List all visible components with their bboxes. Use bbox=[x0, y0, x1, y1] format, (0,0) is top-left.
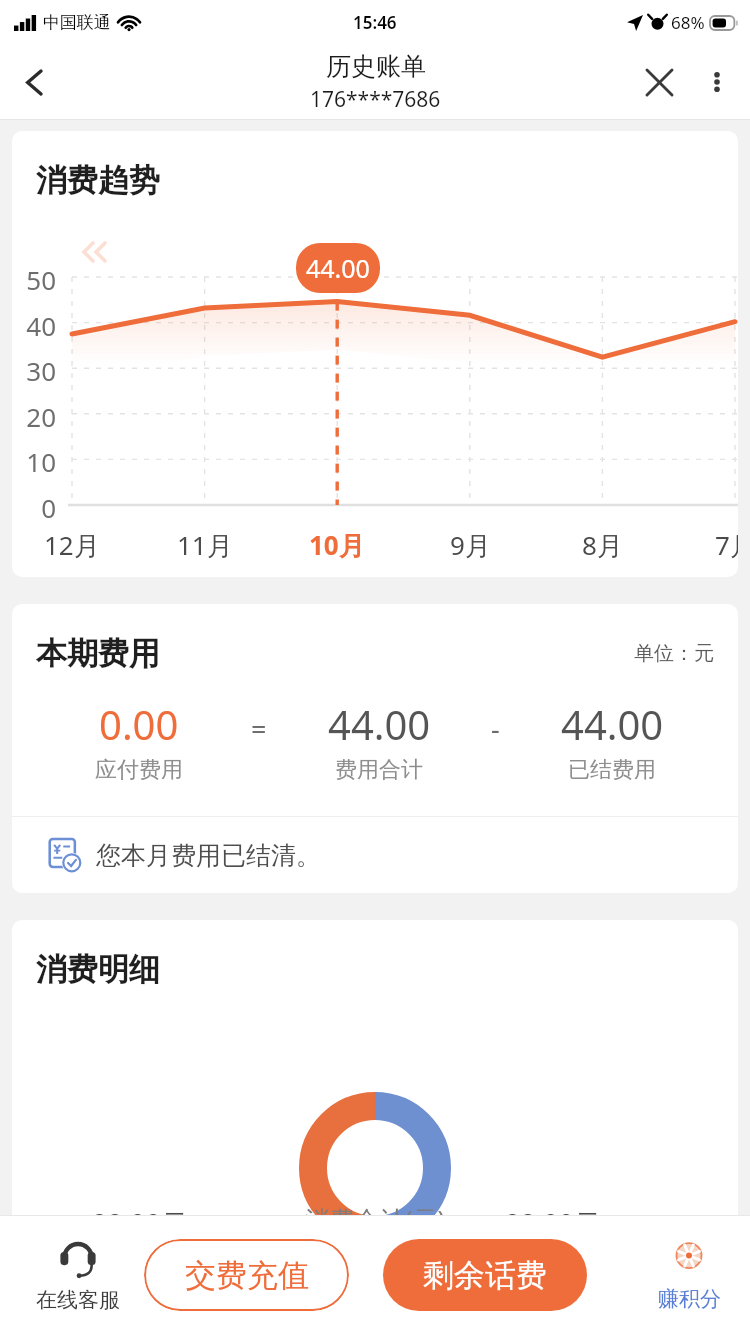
staticText: 单位：元 bbox=[634, 641, 714, 666]
button[interactable]: 在线客服 bbox=[22, 1215, 134, 1334]
staticText: 历史账单 bbox=[326, 51, 426, 82]
staticText: 30 bbox=[12, 353, 56, 388]
staticText: 44.00 bbox=[561, 697, 664, 751]
staticText: 中国联通 bbox=[43, 12, 111, 33]
staticText: 68% bbox=[671, 11, 705, 34]
staticText: 费用合计 bbox=[335, 756, 423, 784]
staticText: 20 bbox=[12, 399, 56, 434]
staticText: 交费充值 bbox=[185, 1256, 309, 1295]
staticText: 7月 bbox=[715, 527, 738, 563]
staticText: 40 bbox=[12, 308, 56, 343]
staticText: 在线客服 bbox=[36, 1287, 120, 1313]
button[interactable]: 赚积分 bbox=[644, 1215, 734, 1334]
staticText: 0.00 bbox=[99, 697, 179, 751]
staticText: 10月 bbox=[309, 527, 365, 563]
staticText: 15:46 bbox=[353, 11, 397, 34]
staticText: 176****7686 bbox=[310, 85, 441, 114]
staticText: = bbox=[251, 710, 267, 747]
staticText: 22.00元 bbox=[505, 1205, 602, 1242]
staticText: 您本月费用已结清。 bbox=[96, 840, 321, 871]
button[interactable]: 交费充值 bbox=[144, 1239, 349, 1311]
button[interactable]: 剩余话费 bbox=[383, 1239, 587, 1311]
button[interactable]: Back bbox=[6, 53, 64, 111]
staticText: 22.00元 bbox=[92, 1205, 189, 1242]
staticText: 9月 bbox=[450, 527, 491, 563]
staticText: 11月 bbox=[177, 527, 233, 563]
button[interactable]: Close bbox=[630, 53, 688, 111]
button[interactable]: More options bbox=[688, 53, 746, 111]
staticText: 消费明细 bbox=[36, 950, 160, 989]
staticText: 0 bbox=[12, 490, 56, 525]
staticText: 应付费用 bbox=[95, 756, 183, 784]
staticText: 44.00 bbox=[328, 697, 431, 751]
staticText: 10 bbox=[12, 444, 56, 479]
staticText: 剩余话费 bbox=[423, 1256, 547, 1295]
staticText: - bbox=[491, 710, 500, 747]
staticText: 44.00 bbox=[306, 251, 370, 285]
staticText: 赚积分 bbox=[658, 1286, 721, 1312]
staticText: 50 bbox=[12, 262, 56, 297]
staticText: 消费趋势 bbox=[36, 161, 160, 200]
staticText: 消费合计(元) bbox=[305, 1202, 446, 1236]
staticText: 已结费用 bbox=[568, 756, 656, 784]
staticText: 8月 bbox=[582, 527, 623, 563]
staticText: 12月 bbox=[44, 527, 100, 563]
staticText: 本期费用 bbox=[36, 634, 160, 673]
